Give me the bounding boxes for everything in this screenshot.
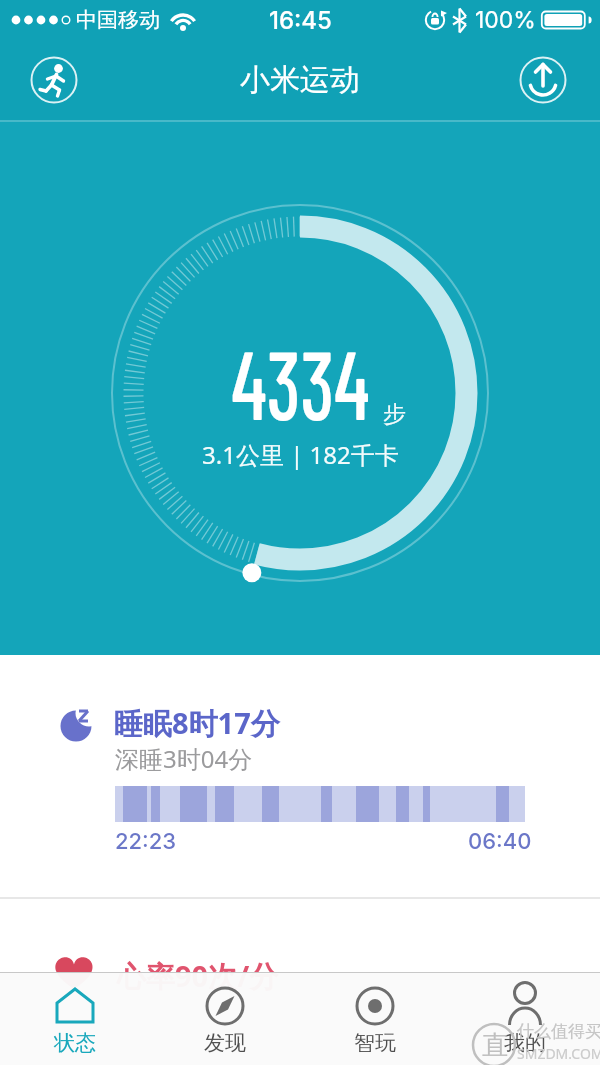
staticText: 发现	[204, 1030, 246, 1056]
button[interactable]	[31, 57, 77, 103]
staticText: 智玩	[354, 1030, 396, 1056]
staticText: 4334	[231, 324, 370, 439]
button[interactable]: 发现	[150, 972, 300, 1065]
staticText: 16:45	[269, 6, 332, 35]
staticText: 深睡3时04分	[115, 742, 253, 775]
staticText: 06:40	[468, 828, 532, 855]
button[interactable]: 状态	[0, 972, 150, 1065]
staticText: 直	[482, 1029, 508, 1062]
button[interactable]	[520, 57, 566, 103]
staticText: 状态	[54, 1030, 96, 1056]
staticText: 小米运动	[240, 61, 360, 99]
staticText: 100%	[475, 6, 536, 34]
button[interactable]: 心率90次/分	[0, 898, 600, 988]
button[interactable]: 睡眠8时17分	[0, 655, 600, 898]
staticText: 步	[383, 400, 406, 429]
staticText: SMZDM.COM	[517, 1044, 600, 1063]
button[interactable]: 智玩	[300, 972, 450, 1065]
staticText: 3.1公里 | 182千卡	[202, 438, 399, 471]
staticText: 我的	[504, 1030, 546, 1056]
staticText: 中国移动	[76, 7, 160, 33]
staticText: 22:23	[115, 828, 177, 855]
staticText: 心率90次/分	[117, 956, 279, 996]
staticText: 睡眠8时17分	[114, 703, 280, 743]
button[interactable]: 我的	[450, 972, 600, 1065]
staticText: 什么值得买	[517, 1021, 600, 1042]
